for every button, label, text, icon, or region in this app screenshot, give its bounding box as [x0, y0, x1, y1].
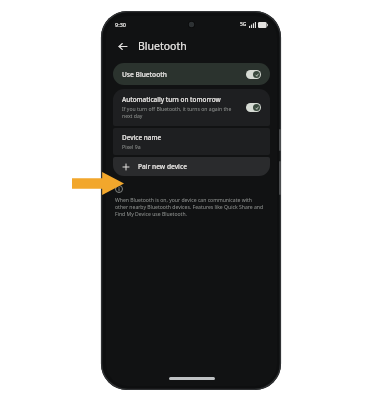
button[interactable]: Toggle — [246, 70, 261, 79]
button[interactable]: Use Bluetooth — [113, 63, 270, 85]
staticText: 9:30 — [115, 21, 126, 28]
button[interactable]: Pair new device — [113, 157, 270, 176]
staticText: 5G — [240, 21, 247, 28]
button[interactable]: Back — [112, 36, 132, 56]
button[interactable]: Toggle — [246, 103, 261, 112]
staticText: Bluetooth — [138, 39, 187, 53]
button[interactable]: Automatically turn on tomorrow — [113, 89, 270, 126]
staticText: When Bluetooth is on, your device can co… — [115, 197, 264, 218]
staticText: Automatically turn on tomorrow — [122, 95, 221, 104]
button[interactable]: Device name — [113, 128, 270, 155]
staticText: Pixel 9a — [122, 143, 141, 150]
staticText: If you turn off Bluetooth, it turns on a… — [122, 106, 240, 120]
staticText: Device name — [122, 133, 162, 142]
staticText: Use Bluetooth — [122, 70, 167, 79]
staticText: Pair new device — [138, 162, 187, 171]
